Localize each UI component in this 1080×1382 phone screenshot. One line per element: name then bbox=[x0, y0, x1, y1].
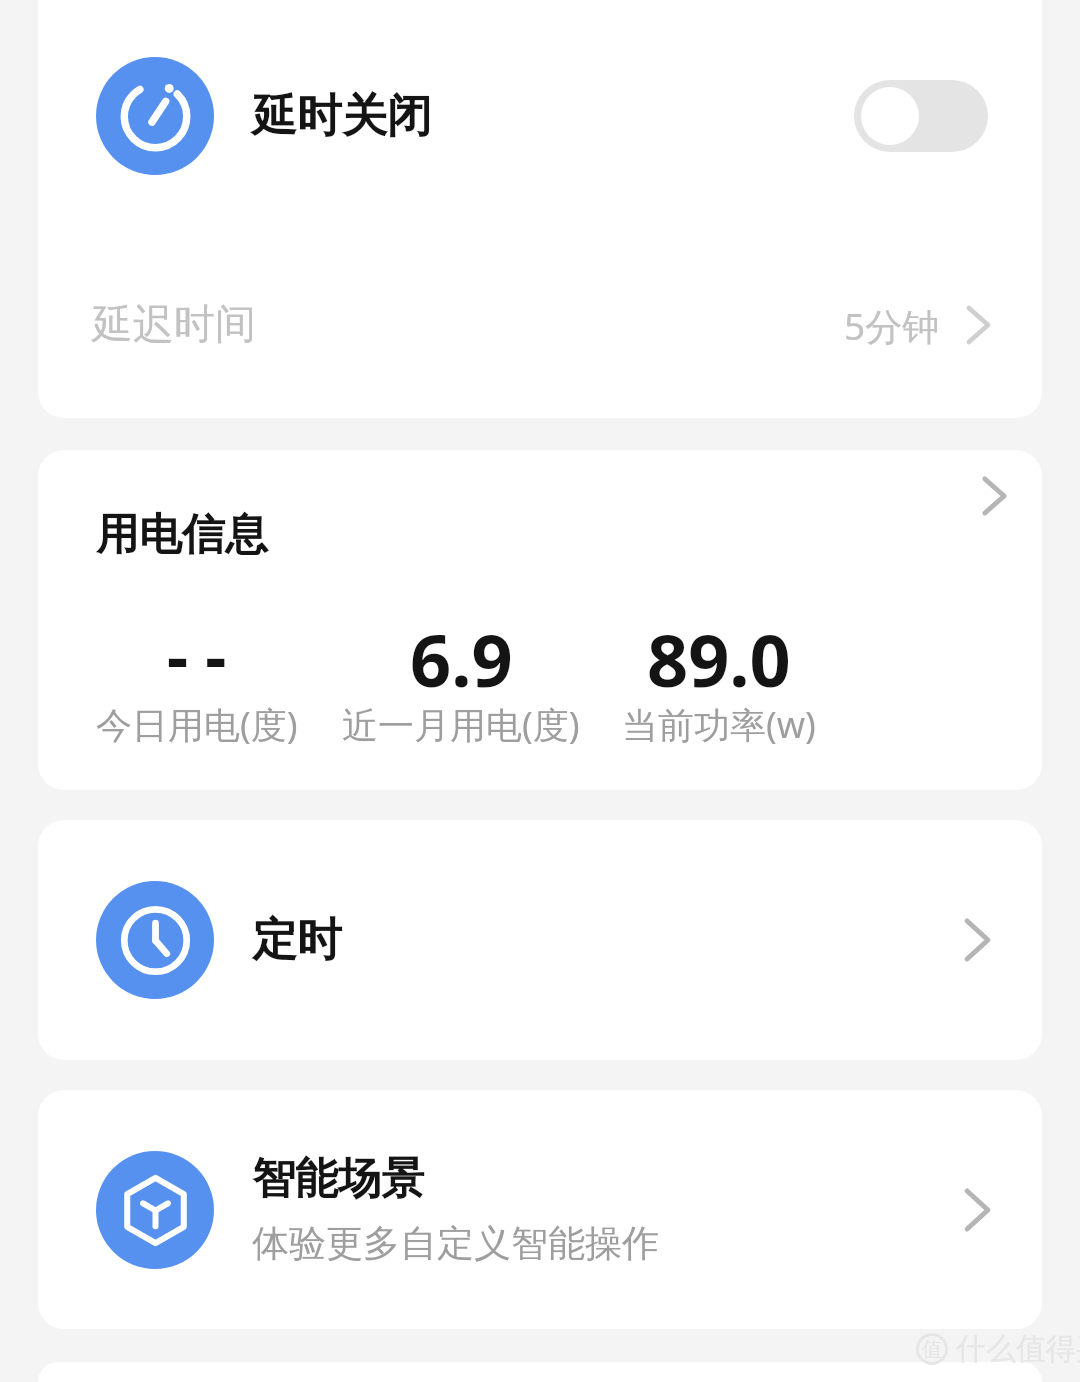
staticText: 智能场景 bbox=[252, 1152, 424, 1206]
staticText: 延迟时间 bbox=[92, 299, 256, 351]
staticText: - - bbox=[167, 610, 227, 694]
button[interactable]: 延时关闭 bbox=[38, 0, 1042, 232]
button[interactable]: 延迟时间 bbox=[38, 232, 1042, 418]
staticText: 什么值得买 bbox=[956, 1330, 1080, 1368]
staticText: 6.9 bbox=[410, 610, 513, 694]
staticText: 用电信息 bbox=[96, 508, 268, 562]
staticText: 近一月用电(度) bbox=[342, 700, 580, 749]
button[interactable]: 延时关闭开关 bbox=[854, 80, 988, 152]
staticText: 5分钟 bbox=[844, 300, 940, 351]
button[interactable]: 用电信息 bbox=[38, 450, 1042, 790]
staticText: 延时关闭 bbox=[252, 88, 432, 145]
staticText: 今日用电(度) bbox=[96, 700, 298, 749]
staticText: 值 bbox=[922, 1337, 942, 1362]
staticText: 当前功率(w) bbox=[622, 700, 816, 749]
button[interactable]: 定时 bbox=[38, 820, 1042, 1060]
button[interactable]: 智能场景 bbox=[38, 1090, 1042, 1329]
staticText: 89.0 bbox=[647, 610, 791, 694]
staticText: 定时 bbox=[252, 912, 342, 969]
staticText: 体验更多自定义智能操作 bbox=[252, 1220, 659, 1267]
